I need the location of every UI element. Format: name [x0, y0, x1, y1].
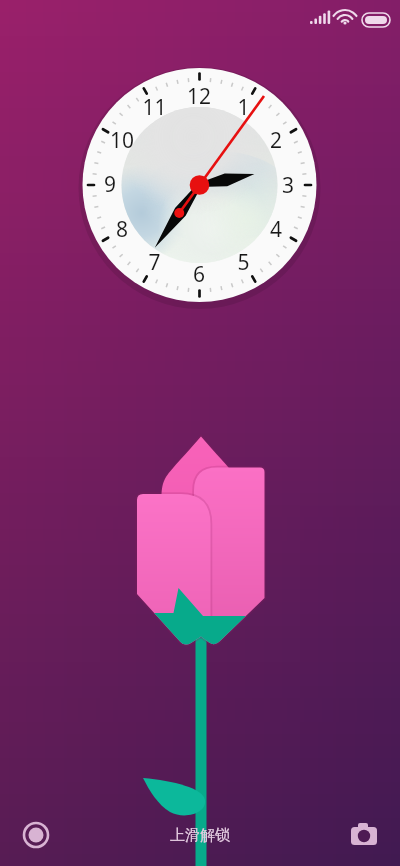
staticText: 上滑解锁 [170, 826, 230, 845]
button[interactable]: Camera [342, 813, 386, 857]
button[interactable]: Voice assistant [14, 813, 58, 857]
button[interactable]: 上滑解锁 [170, 826, 230, 845]
